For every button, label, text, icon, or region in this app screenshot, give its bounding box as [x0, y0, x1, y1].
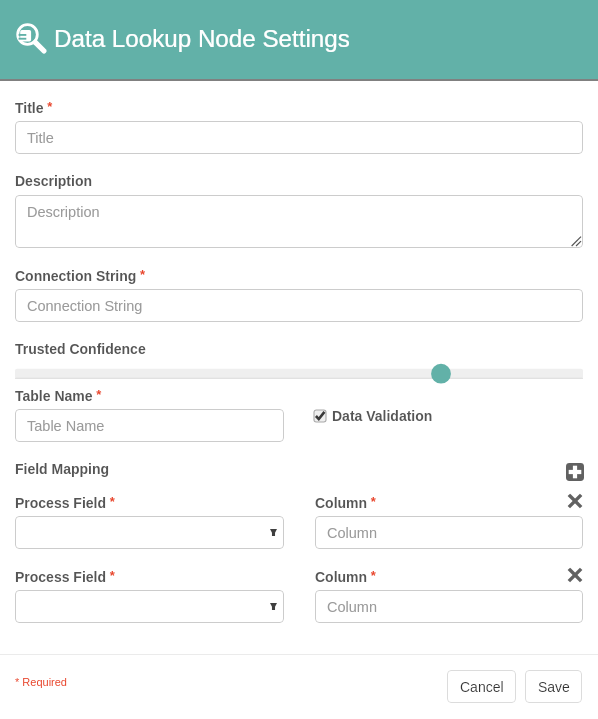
- staticText: Connection String *: [15, 267, 145, 284]
- staticText: Description: [27, 204, 100, 220]
- staticText: Title: [27, 130, 54, 146]
- button[interactable]: Process Field dropdown: [15, 590, 284, 623]
- staticText: * Required: [15, 676, 67, 688]
- staticText: Column: [327, 599, 377, 615]
- staticText: Connection String: [27, 298, 143, 314]
- staticText: Process Field *: [15, 568, 115, 585]
- button[interactable]: Description: [15, 195, 583, 248]
- staticText: Process Field *: [15, 494, 115, 511]
- staticText: Cancel: [460, 679, 504, 695]
- staticText: Data Lookup Node Settings: [54, 25, 350, 52]
- staticText: Description: [15, 173, 93, 189]
- staticText: Column *: [315, 494, 376, 511]
- button[interactable]: Connection String: [15, 289, 583, 322]
- staticText: Data Validation: [332, 408, 433, 424]
- button[interactable]: Save: [525, 670, 582, 703]
- button[interactable]: Table Name: [15, 409, 284, 442]
- staticText: Column *: [315, 568, 376, 585]
- staticText: Table Name *: [15, 387, 102, 404]
- button[interactable]: Data Validation: [314, 405, 433, 427]
- button[interactable]: Remove field mapping: [565, 491, 585, 511]
- button[interactable]: Title: [15, 121, 583, 154]
- staticText: Save: [538, 679, 570, 695]
- staticText: Trusted Confidence: [15, 341, 146, 357]
- staticText: Field Mapping: [15, 461, 110, 477]
- staticText: Column: [327, 525, 377, 541]
- staticText: Table Name: [27, 418, 105, 434]
- button[interactable]: Column: [315, 516, 583, 549]
- staticText: Title *: [15, 99, 53, 116]
- button[interactable]: Remove field mapping: [565, 565, 585, 585]
- button[interactable]: Trusted Confidence slider: [15, 363, 583, 385]
- button[interactable]: Add field mapping: [563, 460, 586, 483]
- button[interactable]: Process Field dropdown: [15, 516, 284, 549]
- button[interactable]: Column: [315, 590, 583, 623]
- button[interactable]: Cancel: [447, 670, 516, 703]
